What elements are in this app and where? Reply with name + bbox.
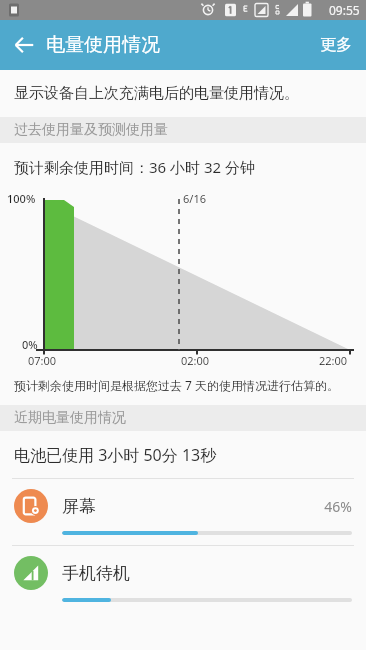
staticText: 电池已使用 3小时 50分 13秒 — [14, 444, 217, 466]
staticText: 显示设备自上次充满电后的电量使用情况。 — [14, 84, 299, 103]
staticText: 0% — [22, 337, 38, 352]
staticText: 100% — [7, 191, 36, 206]
staticText: 09:55 — [329, 2, 360, 18]
staticText: 02:00 — [181, 353, 210, 368]
staticText: 07:00 — [28, 353, 57, 368]
staticText: 预计剩余使用时间是根据您过去 7 天的使用情况进行估算的。 — [14, 377, 340, 393]
staticText: 屏幕 — [62, 496, 96, 517]
staticText: 近期电量使用情况 — [14, 409, 126, 427]
staticText: 预计剩余使用时间：36 小时 32 分钟 — [14, 157, 256, 177]
staticText: 22:00 — [319, 353, 348, 368]
button[interactable]: 更多 — [306, 23, 366, 67]
staticText: 手机待机 — [62, 563, 130, 584]
staticText: 6/16 — [183, 191, 206, 206]
button[interactable]: 手机待机 — [0, 546, 366, 612]
staticText: 46% — [324, 497, 352, 516]
staticText: 更多 — [320, 35, 352, 55]
button[interactable]: Back — [0, 21, 48, 69]
staticText: 过去使用量及预测使用量 — [14, 121, 168, 139]
button[interactable]: 屏幕 — [0, 479, 366, 545]
staticText: 电量使用情况 — [46, 33, 160, 57]
